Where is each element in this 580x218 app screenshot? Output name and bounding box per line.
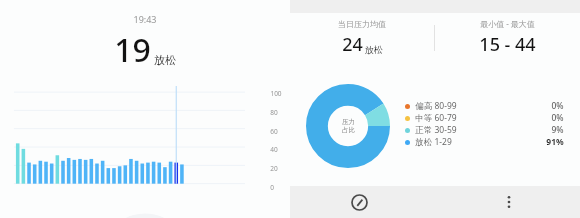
staticText: 40	[270, 145, 278, 154]
staticText: 偏高 80-99	[415, 100, 457, 112]
staticText: 15 - 44	[479, 32, 536, 57]
staticText: 19	[114, 28, 151, 72]
staticText: 放松	[365, 44, 383, 55]
staticText: 91%	[546, 136, 564, 148]
button[interactable]: 中等 60-79	[405, 112, 564, 124]
staticText: 24	[342, 32, 363, 57]
staticText: 0%	[551, 100, 564, 112]
button[interactable]: 正常 30-59	[405, 124, 564, 136]
staticText: 正常 30-59	[415, 124, 457, 136]
staticText: 0	[270, 183, 274, 192]
staticText: 中等 60-79	[415, 112, 457, 124]
button[interactable]: 偏高 80-99	[405, 100, 564, 112]
staticText: 60	[270, 127, 278, 136]
staticText: 9%	[551, 124, 564, 136]
staticText: 占比	[342, 126, 355, 134]
staticText: 80	[270, 108, 278, 117]
staticText: 19:43	[133, 13, 157, 25]
button[interactable]: More options	[496, 189, 522, 215]
staticText: 放松 1-29	[415, 136, 452, 148]
staticText: 当日压力均值	[338, 19, 386, 29]
staticText: 20	[270, 164, 278, 173]
staticText: 0%	[551, 112, 564, 124]
staticText: 放松	[154, 53, 176, 67]
button[interactable]: Stress gauge	[346, 189, 372, 215]
staticText: 100	[270, 89, 282, 98]
button[interactable]: 放松 1-29	[405, 136, 564, 148]
staticText: 最小值 - 最大值	[480, 18, 535, 29]
staticText: 压力	[342, 118, 355, 126]
